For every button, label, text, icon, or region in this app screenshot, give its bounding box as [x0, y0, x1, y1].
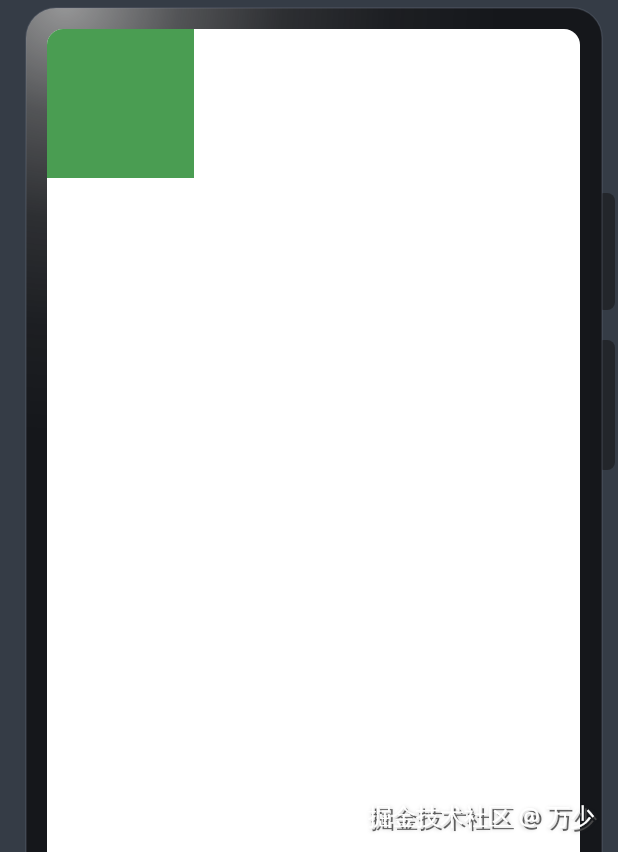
staticText: 掘金技术社区 @ 万少: [368, 799, 595, 832]
staticText: 掘金技术社区 @ 万少: [371, 802, 598, 835]
